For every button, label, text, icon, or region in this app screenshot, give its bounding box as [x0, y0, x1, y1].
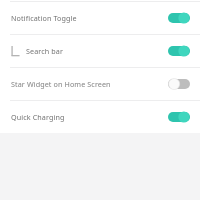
- button[interactable]: Notification Toggle: [0, 2, 200, 34]
- staticText: Search bar: [26, 46, 162, 56]
- staticText: Notification Toggle: [11, 13, 162, 23]
- button[interactable]: Star Widget on Home Screen: [0, 68, 200, 100]
- button[interactable]: Search bar on: [168, 43, 190, 59]
- button[interactable]: Quick Charging: [0, 101, 200, 133]
- button[interactable]: Star Widget on Home Screen off: [168, 76, 190, 92]
- button[interactable]: Notification Toggle on: [168, 10, 190, 26]
- staticText: Quick Charging: [11, 112, 162, 122]
- button[interactable]: Quick Charging on: [168, 109, 190, 125]
- staticText: Star Widget on Home Screen: [11, 79, 162, 89]
- button[interactable]: Search bar: [0, 35, 200, 67]
